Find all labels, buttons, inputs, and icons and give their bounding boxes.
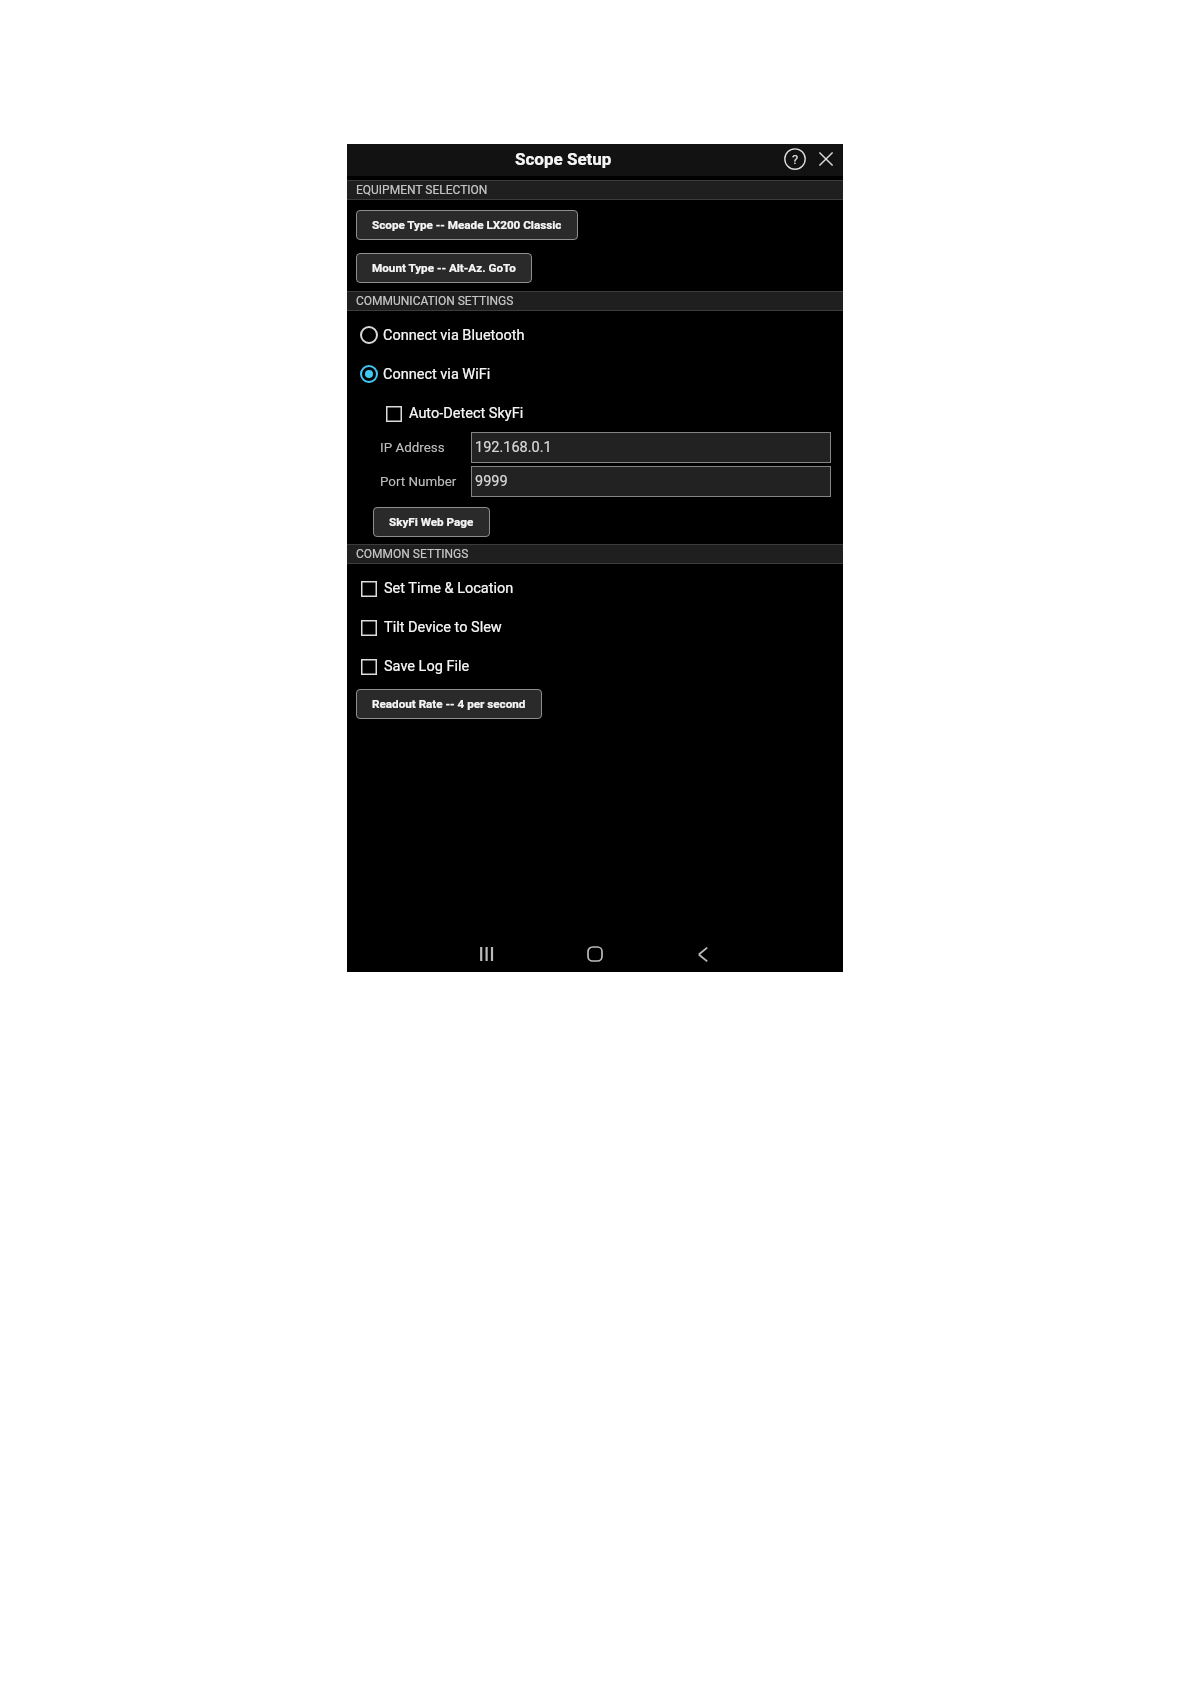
button[interactable]: 192.168.0.1 bbox=[471, 432, 831, 463]
button[interactable]: Scope Type -- Meade LX200 Classic bbox=[356, 210, 578, 240]
button[interactable]: Back bbox=[666, 930, 740, 978]
button[interactable]: Tilt Device to Slew bbox=[347, 619, 843, 636]
button[interactable]: Recents bbox=[450, 930, 524, 978]
button[interactable]: Save Log File bbox=[347, 658, 843, 675]
button[interactable]: Help bbox=[780, 144, 810, 174]
staticText: Scope Type -- Meade LX200 Classic bbox=[372, 218, 562, 232]
staticText: Save Log File bbox=[384, 658, 470, 675]
staticText: IP Address bbox=[380, 440, 471, 456]
button[interactable]: SkyFi Web Page bbox=[373, 507, 490, 537]
button[interactable]: Set Time & Location bbox=[347, 580, 843, 597]
staticText: Connect via Bluetooth bbox=[383, 327, 525, 344]
button[interactable]: Auto-Detect SkyFi bbox=[347, 405, 843, 422]
staticText: COMMON SETTINGS bbox=[356, 547, 469, 561]
button[interactable]: Mount Type -- Alt-Az. GoTo bbox=[356, 253, 532, 283]
staticText: Auto-Detect SkyFi bbox=[409, 405, 524, 422]
staticText: EQUIPMENT SELECTION bbox=[356, 183, 488, 197]
button[interactable]: Close bbox=[810, 144, 842, 174]
staticText: Mount Type -- Alt-Az. GoTo bbox=[372, 261, 516, 275]
staticText: Scope Setup bbox=[515, 149, 612, 169]
staticText: Port Number bbox=[380, 474, 471, 490]
staticText: 192.168.0.1 bbox=[475, 439, 552, 456]
button[interactable]: Home bbox=[558, 930, 632, 978]
staticText: COMMUNICATION SETTINGS bbox=[356, 294, 514, 308]
button[interactable]: Connect via WiFi bbox=[347, 365, 843, 383]
staticText: Readout Rate -- 4 per second bbox=[372, 697, 526, 711]
staticText: Set Time & Location bbox=[384, 580, 514, 597]
staticText: Tilt Device to Slew bbox=[384, 619, 502, 636]
button[interactable]: Connect via Bluetooth bbox=[347, 326, 843, 344]
staticText: ? bbox=[792, 152, 799, 167]
button[interactable]: 9999 bbox=[471, 466, 831, 497]
button[interactable]: Readout Rate -- 4 per second bbox=[356, 689, 542, 719]
staticText: SkyFi Web Page bbox=[389, 515, 474, 529]
staticText: 9999 bbox=[475, 473, 508, 490]
staticText: Connect via WiFi bbox=[383, 366, 491, 383]
